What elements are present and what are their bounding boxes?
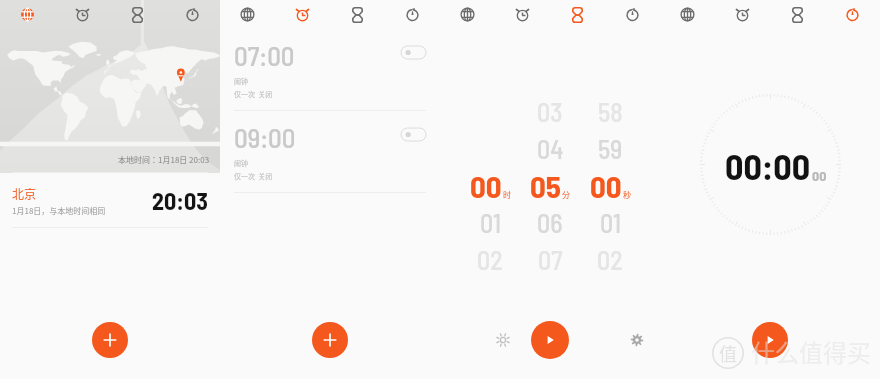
staticText: 00 [470, 167, 502, 204]
staticText: 20:03 [152, 186, 208, 215]
staticText: 01 [480, 207, 501, 238]
button[interactable]: Toggle alarm [401, 46, 426, 59]
button[interactable]: Alarm sound [491, 328, 515, 352]
staticText: 59 [598, 133, 623, 164]
staticText: 仅一次 关闭 [234, 89, 273, 99]
button[interactable]: Timer [330, 0, 385, 29]
staticText: 05 [530, 167, 561, 204]
button[interactable]: Add alarm [312, 322, 348, 358]
button[interactable]: 07:00 [220, 29, 440, 111]
button[interactable]: Start timer [531, 321, 569, 359]
staticText: 02 [477, 244, 503, 275]
staticText: 00:00 [725, 144, 811, 187]
button[interactable]: Alarm [495, 0, 550, 29]
staticText: 分 [562, 189, 570, 201]
staticText: 02 [597, 244, 623, 275]
staticText: 北京 [12, 185, 37, 202]
button[interactable]: Settings [625, 328, 649, 352]
button[interactable]: World clock [440, 0, 495, 29]
staticText: 06 [537, 207, 563, 238]
staticText: 03 [537, 96, 563, 127]
staticText: 闹钟 [234, 76, 248, 86]
button[interactable]: 09:00 [220, 111, 440, 193]
button[interactable]: World clock [660, 0, 715, 29]
button[interactable]: Alarm [55, 0, 110, 29]
staticText: 07 [538, 244, 563, 275]
staticText: 04 [537, 133, 564, 164]
button[interactable]: Toggle alarm [401, 128, 426, 141]
staticText: 时 [503, 189, 511, 201]
staticText: 本地时间：1月18日 20:03 [118, 154, 210, 166]
staticText: 00 [812, 167, 827, 184]
button[interactable]: Add city [92, 322, 128, 358]
button[interactable]: Stopwatch [385, 0, 440, 29]
staticText: 1月18日，与本地时间相同 [12, 205, 106, 217]
staticText: 值 [719, 340, 737, 366]
button[interactable]: World clock [220, 0, 275, 29]
staticText: 01 [600, 207, 621, 238]
staticText: 什么值得买 [751, 334, 871, 369]
button[interactable]: Start stopwatch [752, 322, 788, 358]
button[interactable]: 北京 [0, 174, 220, 227]
button[interactable]: World clock [0, 0, 55, 29]
staticText: 58 [598, 96, 623, 127]
button[interactable]: Stopwatch [165, 0, 220, 29]
button[interactable]: Timer [770, 0, 825, 29]
staticText: 00 [590, 167, 622, 204]
staticText: 仅一次 关闭 [234, 171, 273, 181]
staticText: 09:00 [234, 121, 296, 153]
button[interactable]: Timer [110, 0, 165, 29]
button[interactable]: Stopwatch [605, 0, 660, 29]
button[interactable]: Alarm [275, 0, 330, 29]
button[interactable]: Stopwatch [825, 0, 880, 29]
staticText: 07:00 [234, 39, 295, 71]
staticText: 秒 [623, 189, 631, 201]
staticText: 闹钟 [234, 158, 248, 168]
button[interactable]: Timer [550, 0, 605, 29]
staticText: 什么值得买 [751, 334, 871, 369]
button[interactable]: Alarm [715, 0, 770, 29]
